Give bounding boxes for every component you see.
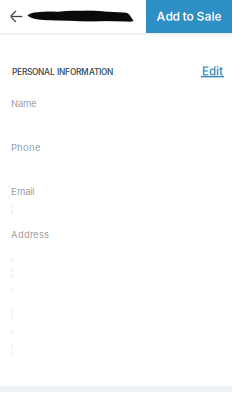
staticText: Email [11, 186, 34, 197]
staticText: Edit [202, 65, 223, 78]
button[interactable]: Edit [201, 67, 224, 81]
button[interactable]: Add to Sale [146, 0, 232, 33]
staticText: Name [11, 98, 37, 109]
staticText: PERSONAL INFORMATION [12, 67, 113, 77]
staticText: Phone [11, 142, 41, 153]
staticText: Add to Sale [156, 9, 221, 24]
staticText: Address [11, 229, 49, 240]
button[interactable]: Back [0, 0, 27, 33]
